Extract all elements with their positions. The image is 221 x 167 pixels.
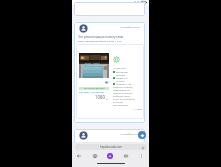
button[interactable]: 12 ноября 16:20 [74, 22, 145, 123]
staticText: Выбирали ткань! [113, 95, 131, 98]
staticText: действительно [113, 104, 129, 107]
button[interactable]: Tabs [121, 151, 131, 161]
staticText: hepsiburada.com [100, 145, 122, 149]
staticText: 1080 [95, 94, 106, 100]
staticText: ₽ [106, 97, 109, 100]
staticText: по карте [116, 80, 125, 83]
staticText: меньше 50 циклов. [113, 92, 133, 95]
staticText: — Ирина [113, 108, 142, 111]
staticText: 14:32 [84, 1, 94, 6]
button[interactable]: Browser menu [105, 151, 115, 161]
staticText: 12 ноября 16:20 [120, 132, 140, 135]
button[interactable]: More options [136, 151, 146, 161]
staticText: 12 ноября 16:20 [120, 25, 140, 28]
staticText: Бесплатная [116, 71, 128, 74]
button[interactable]: Home [90, 151, 100, 161]
button[interactable]: hepsiburada.com [75, 144, 147, 150]
staticText: 10 Мая 2021 [113, 67, 127, 70]
staticText: Скидка 10% [116, 77, 128, 80]
staticText: выдерживает не [113, 89, 130, 92]
staticText: Эти рекомендации помогут вам [78, 35, 124, 39]
staticText: почта [74, 5, 82, 8]
button[interactable] [74, 2, 145, 16]
staticText: бесплатная доставка [84, 87, 105, 90]
staticText: Очень не знаю белую [113, 98, 135, 101]
staticText: Тема: Постельное бельё, сатин, 1.5 сп [78, 39, 122, 42]
staticText: Гарантия 1 год [116, 83, 132, 86]
staticText: КПБ сатин 1,5-спальный [79, 91, 104, 94]
staticText: Отличное качество, [113, 86, 134, 89]
staticText: доставка [116, 74, 126, 77]
other: Reload [141, 146, 144, 149]
staticText: на погоду [113, 101, 123, 104]
button[interactable]: Scroll to top [138, 131, 146, 139]
button[interactable]: 12 ноября 16:20 [74, 129, 145, 143]
button[interactable]: Back [74, 151, 84, 161]
